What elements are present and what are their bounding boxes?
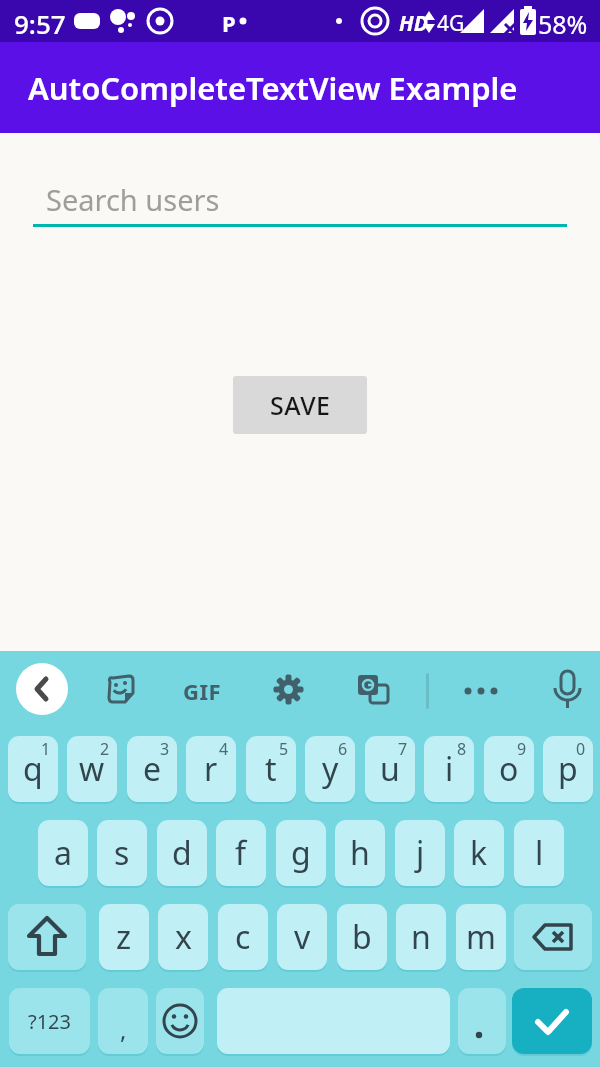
staticText: v [294,915,311,959]
staticText: r [204,747,218,791]
staticText: q [23,747,43,791]
button[interactable]: n [396,904,446,970]
button[interactable] [104,673,136,705]
staticText: 4G [437,9,465,38]
button[interactable]: p [543,736,593,802]
button[interactable]: w [67,736,117,802]
staticText: 0 [576,738,586,760]
staticText: z [116,915,132,959]
button[interactable]: u [365,736,415,802]
button[interactable]: r [186,736,236,802]
staticText: u [380,747,400,791]
staticText: c [235,915,251,959]
button[interactable] [356,673,390,707]
button[interactable]: c [218,904,268,970]
staticText: h [350,831,370,875]
staticText: 9 [517,738,527,760]
staticText: o [499,747,519,791]
staticText: d [172,831,192,875]
button[interactable]: , [98,988,148,1054]
button[interactable]: GIF [183,676,222,706]
button[interactable] [551,668,583,714]
staticText: b [352,915,372,959]
button[interactable]: y [305,736,355,802]
button[interactable]: d [157,820,207,886]
staticText: s [114,831,130,875]
staticText: p [558,747,578,791]
button[interactable] [512,988,592,1054]
button[interactable]: h [335,820,385,886]
staticText: 58% [538,7,588,41]
staticText: SAVE [270,388,331,422]
button[interactable]: SAVE [233,376,367,434]
staticText: n [411,915,431,959]
button[interactable]: b [337,904,387,970]
staticText: Search users [46,180,220,219]
button[interactable]: t [246,736,296,802]
button[interactable] [514,904,592,970]
button[interactable] [8,904,86,970]
staticText: e [143,747,162,791]
button[interactable]: l [514,820,564,886]
button[interactable]: f [216,820,266,886]
button[interactable] [156,988,204,1054]
button[interactable]: Search users [33,160,567,227]
staticText: 1 [41,738,51,760]
staticText: a [54,831,72,875]
button[interactable]: x [158,904,208,970]
staticText: l [535,831,544,875]
staticText: m [466,915,496,959]
button[interactable]: z [99,904,149,970]
staticText: , [120,1013,127,1046]
staticText: 3 [160,738,170,760]
button[interactable]: s [97,820,147,886]
button[interactable]: e [127,736,177,802]
staticText: i [445,747,454,791]
staticText: f [235,831,247,875]
staticText: k [470,831,488,875]
button[interactable]: g [276,820,326,886]
button[interactable] [16,663,68,715]
button[interactable]: a [38,820,88,886]
button[interactable]: j [395,820,445,886]
staticText: AutoCompleteTextView Example [28,67,518,109]
staticText: ?123 [28,1008,71,1035]
button[interactable]: m [456,904,506,970]
staticText: 9:57 [14,6,66,41]
button[interactable]: q [8,736,58,802]
button[interactable] [217,988,450,1054]
staticText: g [291,831,311,875]
staticText: 6 [338,738,348,760]
button[interactable] [458,988,506,1054]
staticText: 5 [279,738,289,760]
button[interactable]: k [454,820,504,886]
staticText: 8 [457,738,467,760]
staticText: 4 [219,738,229,760]
button[interactable]: i [424,736,474,802]
staticText: HD [399,9,428,38]
staticText: t [265,747,277,791]
staticText: x [175,915,192,959]
button[interactable]: v [277,904,327,970]
staticText: j [416,831,425,875]
button[interactable]: o [484,736,534,802]
staticText: y [322,747,339,791]
staticText: 2 [100,738,110,760]
staticText: P [222,8,236,38]
button[interactable]: ?123 [9,988,90,1054]
button[interactable] [272,673,305,706]
staticText: GIF [183,676,222,706]
staticText: w [79,747,105,791]
staticText: 7 [398,738,408,760]
button[interactable] [462,681,502,701]
